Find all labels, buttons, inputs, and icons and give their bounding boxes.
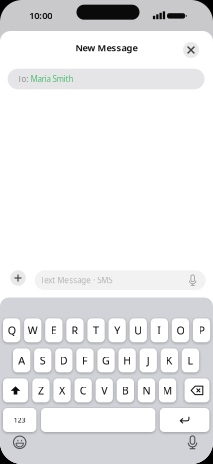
button[interactable]: delete <box>185 378 209 402</box>
staticText: D <box>60 353 68 367</box>
button[interactable]: Dictation <box>187 435 198 449</box>
staticText: 123 <box>14 416 26 424</box>
button[interactable]: space <box>41 408 155 432</box>
button[interactable]: N <box>138 378 155 402</box>
button[interactable]: To: <box>8 69 205 89</box>
staticText: C <box>80 383 87 397</box>
staticText: F <box>82 353 88 367</box>
staticText: I <box>157 323 161 337</box>
button[interactable]: D <box>55 348 72 372</box>
staticText: V <box>101 383 107 397</box>
button[interactable]: E <box>45 318 62 342</box>
staticText: H <box>123 353 131 367</box>
button[interactable]: U <box>130 318 147 342</box>
staticText: P <box>199 323 205 337</box>
button[interactable]: return <box>160 408 209 432</box>
button[interactable]: M <box>159 378 176 402</box>
staticText: Maria Smith <box>31 74 74 84</box>
button[interactable]: Text Message <box>35 270 206 290</box>
staticText: W <box>28 323 38 337</box>
button[interactable]: Z <box>32 378 50 402</box>
button[interactable]: R <box>66 318 84 342</box>
staticText: L <box>187 353 193 367</box>
staticText: T <box>93 323 99 337</box>
staticText: N <box>142 383 150 397</box>
button[interactable]: F <box>76 348 94 372</box>
staticText: Z <box>38 383 44 397</box>
button[interactable]: J <box>140 348 157 372</box>
button[interactable]: Apps <box>10 270 26 286</box>
button[interactable]: L <box>182 348 199 372</box>
staticText: New Message <box>75 41 137 54</box>
button[interactable]: Emoji <box>13 436 26 448</box>
button[interactable]: W <box>24 318 41 342</box>
button[interactable]: shift <box>3 378 28 402</box>
staticText: X <box>59 383 65 397</box>
button[interactable]: O <box>172 318 189 342</box>
staticText: O <box>176 323 184 337</box>
staticText: J <box>147 353 150 367</box>
staticText: A <box>18 353 25 367</box>
button[interactable]: T <box>87 318 105 342</box>
staticText: R <box>71 323 78 337</box>
button[interactable]: A <box>13 348 30 372</box>
button[interactable]: B <box>117 378 134 402</box>
button[interactable]: Q <box>3 318 20 342</box>
button[interactable]: H <box>118 348 136 372</box>
staticText: To: <box>18 74 29 84</box>
staticText: Text Message · SMS <box>40 275 112 285</box>
button[interactable]: G <box>97 348 115 372</box>
staticText: U <box>134 323 142 337</box>
button[interactable]: S <box>34 348 51 372</box>
staticText: S <box>40 353 46 367</box>
staticText: Y <box>114 323 120 337</box>
staticText: M <box>163 383 173 397</box>
button[interactable]: V <box>96 378 113 402</box>
button[interactable]: Y <box>108 318 126 342</box>
staticText: G <box>102 353 110 367</box>
button[interactable]: P <box>193 318 210 342</box>
button[interactable]: C <box>74 378 92 402</box>
staticText: 10:00 <box>29 9 52 22</box>
staticText: E <box>51 323 57 337</box>
button[interactable]: X <box>53 378 71 402</box>
staticText: K <box>166 353 173 367</box>
button[interactable]: Close <box>183 42 199 58</box>
staticText: B <box>122 383 129 397</box>
button[interactable]: I <box>151 318 168 342</box>
button[interactable]: K <box>161 348 178 372</box>
button[interactable]: 123 <box>3 408 36 432</box>
staticText: Q <box>8 323 16 337</box>
